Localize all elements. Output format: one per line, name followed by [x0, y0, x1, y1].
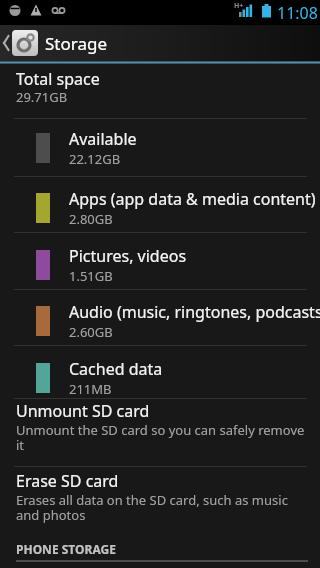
button[interactable]: Storage [0, 25, 320, 61]
staticText: Pictures, videos [69, 245, 187, 267]
staticText: PHONE STORAGE [16, 541, 116, 557]
staticText: Unmount the SD card so you can safely re… [16, 421, 305, 439]
staticText: Erase SD card [16, 470, 119, 492]
staticText: Total space [16, 68, 100, 90]
staticText: 211MB [69, 380, 112, 398]
staticText: 1.51GB [69, 267, 113, 285]
staticText: it [16, 436, 25, 454]
staticText: Storage [45, 32, 108, 55]
staticText: 2.80GB [69, 210, 113, 228]
button[interactable]: Available [0, 119, 320, 176]
button[interactable]: Erase SD card [0, 467, 320, 521]
staticText: Erases all data on the SD card, such as … [16, 491, 288, 509]
button[interactable]: Cached data [0, 346, 320, 398]
staticText: Unmount SD card [16, 400, 150, 422]
button[interactable]: Pictures, videos [0, 233, 320, 289]
staticText: Available [69, 128, 137, 150]
button[interactable]: Apps (app data & media content) [0, 177, 320, 232]
staticText: 29.71GB [16, 88, 68, 106]
button[interactable]: Unmount SD card [0, 399, 320, 466]
staticText: H+ [234, 1, 244, 11]
staticText: Cached data [69, 358, 163, 380]
staticText: 2.60GB [69, 323, 113, 341]
staticText: 11:08 [277, 2, 318, 24]
button[interactable]: Audio (music, ringtones, podcasts, and [0, 290, 320, 345]
staticText: and photos [16, 506, 86, 524]
staticText: Audio (music, ringtones, podcasts, and [69, 301, 320, 323]
button[interactable]: Total space [0, 64, 320, 118]
staticText: 22.12GB [69, 150, 121, 168]
staticText: Apps (app data & media content) [69, 188, 316, 210]
